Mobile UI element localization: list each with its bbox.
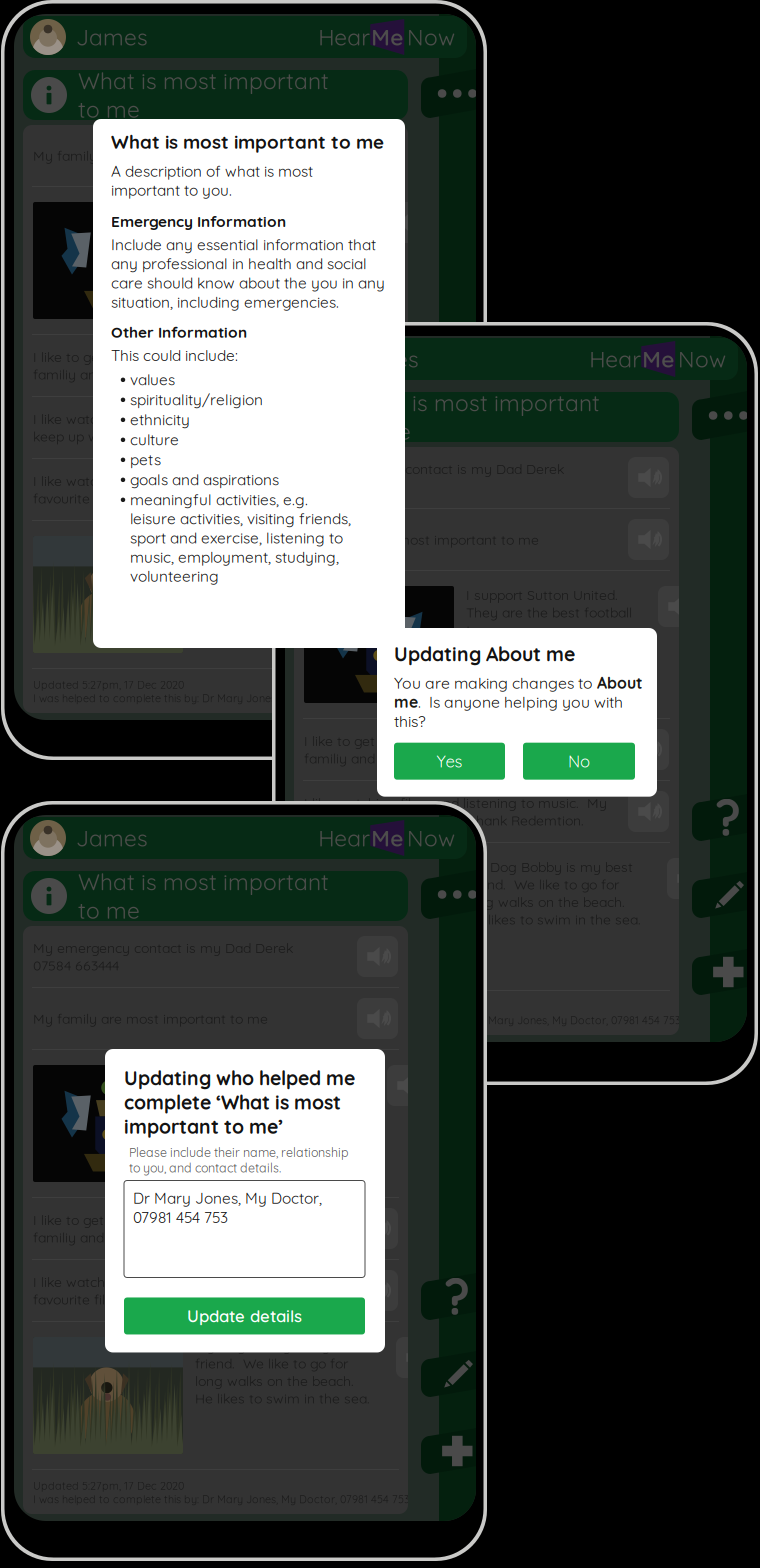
staticText: Hear xyxy=(318,23,370,51)
staticText: meaningful activities, e.g. leisure acti… xyxy=(130,490,351,586)
staticText: I support Sutton United. They are the be… xyxy=(466,586,632,638)
staticText: Yes xyxy=(436,751,462,772)
button[interactable]: Read aloud xyxy=(387,202,428,243)
staticText: My family are most important to me xyxy=(33,1010,268,1027)
button[interactable]: Read aloud xyxy=(628,791,669,832)
staticText: I like watching films and listening to m… xyxy=(304,794,607,829)
staticText: James xyxy=(76,23,148,51)
staticText: My Dog Bobby is my best friend. We like … xyxy=(195,536,370,606)
button[interactable]: Yes xyxy=(394,743,505,780)
staticText: I like watching the news so I can keep u… xyxy=(33,410,241,445)
staticText: James xyxy=(76,824,148,852)
button[interactable]: Help xyxy=(421,1273,476,1320)
button[interactable]: Add xyxy=(692,949,747,995)
button[interactable]: Read aloud xyxy=(658,586,699,627)
button[interactable]: Help xyxy=(692,794,747,841)
button[interactable]: Read aloud xyxy=(667,858,708,899)
button[interactable]: Add xyxy=(421,627,476,673)
staticText: James xyxy=(347,345,419,373)
staticText: Update details xyxy=(187,1306,302,1326)
staticText: You are making changes to About me. Is a… xyxy=(394,673,642,731)
button[interactable]: Edit xyxy=(692,872,747,918)
button[interactable]: Read aloud xyxy=(396,1337,437,1378)
button[interactable]: No xyxy=(523,743,635,780)
staticText: My family are most important to me xyxy=(304,531,539,548)
staticText: My emergency contact is my Dad Derek 075… xyxy=(33,939,293,974)
staticText: My emergency contact is my Dad Derek 075… xyxy=(304,460,564,495)
staticText: I like to get together with my familiy a… xyxy=(33,1211,219,1246)
staticText: Me xyxy=(371,824,403,852)
staticText: My Dog Bobby is my best friend. We like … xyxy=(195,1337,370,1407)
staticText: A description of what is most important … xyxy=(111,161,313,200)
staticText: I like to get together with my familiy a… xyxy=(304,732,490,767)
staticText: My family are most important to me xyxy=(33,147,268,164)
staticText: values xyxy=(130,370,175,389)
staticText: ethnicity xyxy=(130,410,190,429)
staticText: Dr Mary Jones, My Doctor, 07981 454 753 xyxy=(133,1188,322,1227)
button[interactable]: Read aloud xyxy=(628,729,669,770)
button[interactable]: More options xyxy=(421,69,476,118)
staticText: Me xyxy=(642,345,674,373)
staticText: Updating who helped me complete ‘What is… xyxy=(124,1066,355,1138)
staticText: I was helped to complete this by: Dr Mar… xyxy=(33,1492,410,1506)
staticText: What is most important to me xyxy=(78,67,329,123)
staticText: What is most important to me xyxy=(111,130,384,153)
staticText: Updated 5:27pm, 17 Dec 2020 xyxy=(33,678,184,691)
button[interactable]: Update details xyxy=(124,1297,365,1334)
staticText: Now xyxy=(407,824,455,852)
staticText: I was helped to complete this by: Dr Mar… xyxy=(33,691,410,705)
button[interactable]: Edit xyxy=(421,1351,476,1397)
staticText: I like to get together with my familiy a… xyxy=(33,348,219,383)
button[interactable]: More options xyxy=(421,870,476,919)
button[interactable]: Read aloud xyxy=(396,536,437,577)
button[interactable]: Read aloud xyxy=(387,1065,428,1106)
staticText: culture xyxy=(130,430,179,449)
staticText: Now xyxy=(678,345,726,373)
button[interactable]: Edit xyxy=(421,550,476,596)
staticText: No xyxy=(568,751,590,772)
staticText: I support Sutton United. They are the be… xyxy=(195,202,361,254)
button[interactable]: Read aloud xyxy=(357,135,398,176)
staticText: What is most important to me xyxy=(78,868,329,924)
staticText: ? xyxy=(715,787,741,848)
staticText: I like watching films and listening to m… xyxy=(33,1273,336,1308)
button[interactable]: Read aloud xyxy=(357,1208,398,1249)
staticText: Other Information xyxy=(111,322,247,342)
button[interactable]: Read aloud xyxy=(357,1270,398,1311)
button[interactable]: Read aloud xyxy=(628,519,669,560)
staticText: My Dog Bobby is my best friend. We like … xyxy=(466,858,641,928)
button[interactable]: More options xyxy=(692,391,747,440)
button[interactable]: Read aloud xyxy=(628,457,669,498)
staticText: spirituality/religion xyxy=(130,390,263,409)
staticText: I was helped to complete this by: Dr Mar… xyxy=(304,1013,681,1027)
staticText: I like watching films and listening to m… xyxy=(33,472,336,507)
staticText: I support Sutton United. They are the be… xyxy=(195,1065,361,1117)
staticText: Updated 5:27pm, 17 Dec 2020 xyxy=(304,1000,455,1013)
staticText: Updating About me xyxy=(394,642,575,666)
button[interactable]: Read aloud xyxy=(357,998,398,1039)
staticText: What is most important to me xyxy=(349,389,600,445)
staticText: Hear xyxy=(589,345,641,373)
staticText: Please include their name, relationship … xyxy=(129,1144,349,1175)
staticText: ? xyxy=(444,465,470,526)
staticText: Updated 5:27pm, 17 Dec 2020 xyxy=(33,1479,184,1492)
staticText: This could include: xyxy=(111,346,238,365)
staticText: goals and aspirations xyxy=(130,470,279,489)
staticText: Me xyxy=(371,23,403,51)
staticText: Hear xyxy=(318,824,370,852)
button[interactable]: Add xyxy=(421,1428,476,1474)
staticText: ? xyxy=(444,1266,470,1327)
staticText: Emergency Information xyxy=(111,212,286,231)
staticText: Now xyxy=(407,23,455,51)
button[interactable]: Read aloud xyxy=(357,936,398,977)
staticText: pets xyxy=(130,450,161,469)
staticText: Include any essential information that a… xyxy=(111,235,385,311)
